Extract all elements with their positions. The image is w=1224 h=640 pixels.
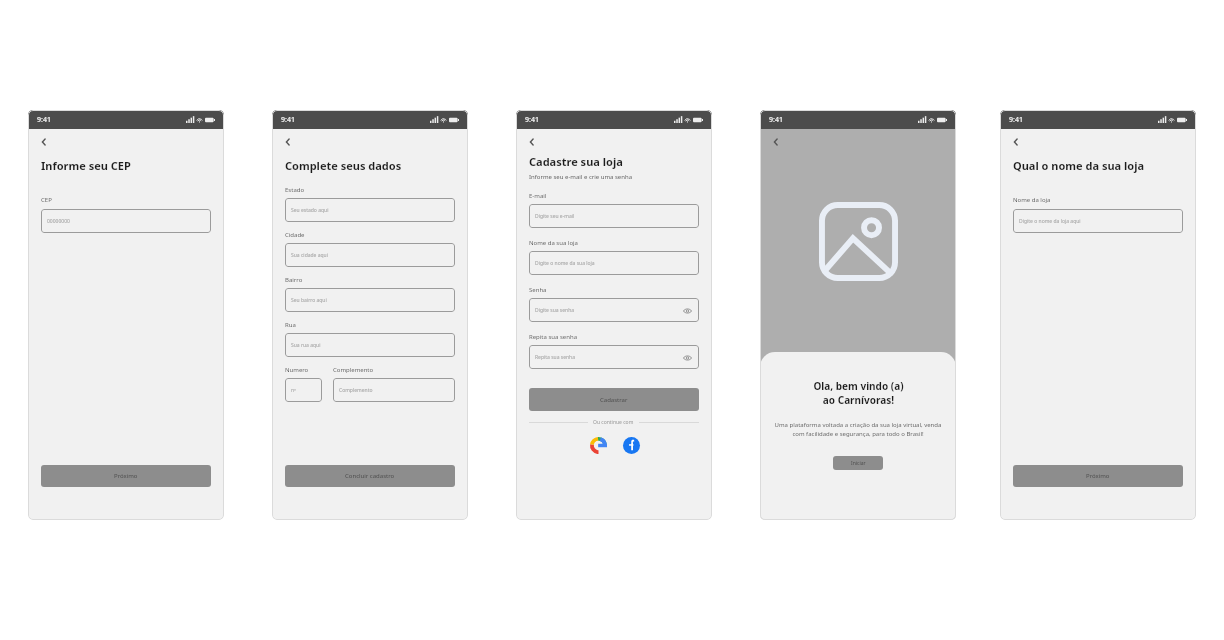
button[interactable]: Próximo (1013, 465, 1183, 487)
button[interactable]: Continue with Google (588, 435, 608, 455)
button[interactable]: Back (33, 131, 55, 153)
button[interactable]: Repita sua senha (529, 345, 699, 369)
staticText: Digite o nome da sua loja (535, 260, 595, 267)
staticText: E-mail (529, 192, 547, 200)
staticText: Complete seus dados (285, 158, 402, 173)
button[interactable]: Próximo (41, 465, 211, 487)
staticText: nº (291, 387, 296, 394)
staticText: Complemento (339, 387, 373, 394)
staticText: Nome da sua loja (529, 239, 578, 247)
staticText: 9:41 (37, 115, 51, 125)
button[interactable]: Sua rua aqui (285, 333, 455, 357)
staticText: Numero (285, 366, 309, 374)
button[interactable]: Complemento (333, 378, 455, 402)
staticText: Uma plataforma voltada a criação da sua … (774, 421, 942, 438)
button[interactable]: Back (521, 131, 543, 153)
staticText: Seu bairro aqui (291, 297, 327, 304)
button[interactable]: Concluir cadastro (285, 465, 455, 487)
button[interactable]: Cadastrar (529, 388, 699, 411)
button[interactable]: Show password (682, 352, 693, 363)
staticText: Próximo (1086, 472, 1110, 480)
staticText: Próximo (114, 472, 138, 480)
button[interactable]: Iniciar (833, 456, 883, 470)
staticText: Sua rua aqui (291, 342, 321, 349)
staticText: Informe seu CEP (41, 158, 131, 173)
button[interactable]: Digite o nome da loja aqui (1013, 209, 1183, 233)
staticText: Qual o nome da sua loja (1013, 158, 1145, 173)
button[interactable]: Back (1005, 131, 1027, 153)
staticText: Complemento (333, 366, 374, 374)
staticText: 9:41 (525, 115, 539, 125)
button[interactable]: nº (285, 378, 322, 402)
staticText: Nome da loja (1013, 196, 1051, 204)
button[interactable]: Back (277, 131, 299, 153)
staticText: Repita sua senha (535, 354, 575, 361)
staticText: Cadastre sua loja (529, 154, 623, 169)
staticText: Seu estado aqui (291, 207, 329, 214)
staticText: Sua cidade aqui (291, 252, 328, 259)
staticText: 9:41 (1009, 115, 1023, 125)
staticText: 9:41 (281, 115, 295, 125)
staticText: Rua (285, 321, 296, 329)
button[interactable]: Show password (682, 305, 693, 316)
button[interactable]: Digite seu e-mail (529, 204, 699, 228)
staticText: Bairro (285, 276, 303, 284)
staticText: Digite sua senha (535, 307, 575, 314)
staticText: 9:41 (769, 115, 783, 125)
staticText: Iniciar (851, 460, 866, 467)
staticText: Estado (285, 186, 305, 194)
button[interactable]: Back (765, 131, 787, 153)
button[interactable]: 00000000 (41, 209, 211, 233)
staticText: Digite o nome da loja aqui (1019, 218, 1081, 225)
staticText: Ola, bem vindo (a) ao Carnívoras! (813, 379, 904, 407)
button[interactable]: Continue with Facebook (621, 435, 641, 455)
staticText: Repita sua senha (529, 333, 577, 341)
staticText: CEP (41, 196, 52, 204)
staticText: Informe seu e-mail e crie uma senha (529, 173, 633, 181)
staticText: 00000000 (47, 218, 70, 225)
staticText: Senha (529, 286, 547, 294)
button[interactable]: Sua cidade aqui (285, 243, 455, 267)
button[interactable]: Seu estado aqui (285, 198, 455, 222)
staticText: Digite seu e-mail (535, 213, 575, 220)
button[interactable]: Digite o nome da sua loja (529, 251, 699, 275)
staticText: Ou continue com (593, 419, 634, 426)
button[interactable]: Seu bairro aqui (285, 288, 455, 312)
staticText: Concluir cadastro (345, 472, 395, 480)
button[interactable]: Digite sua senha (529, 298, 699, 322)
staticText: Cadastrar (600, 396, 628, 404)
staticText: Cidade (285, 231, 305, 239)
